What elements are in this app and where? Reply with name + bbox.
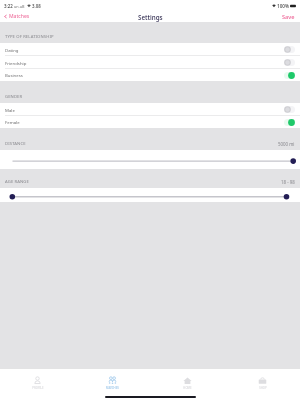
staticText: HOME [183, 386, 192, 390]
button[interactable]: Toggle [284, 59, 295, 66]
button[interactable]: SHOP [225, 369, 300, 391]
staticText: 100% [277, 3, 289, 9]
button[interactable]: Dating [0, 43, 300, 56]
button[interactable]: Back [3, 13, 30, 20]
button[interactable]: Slider [0, 150, 300, 169]
staticText: Friendship [5, 60, 27, 66]
staticText: 3:22 [4, 3, 13, 9]
staticText: SHOP [259, 386, 267, 390]
button[interactable]: Friendship [0, 56, 300, 69]
staticText: 18 - 98 [281, 179, 295, 185]
staticText: GENDER [5, 94, 23, 100]
other: Back [3, 14, 8, 19]
button[interactable]: Toggle [284, 72, 295, 79]
button[interactable]: HOME [150, 369, 225, 391]
staticText: DISTANCE [5, 141, 26, 147]
staticText: 5000 mi [278, 141, 295, 147]
button[interactable]: Toggle [284, 106, 295, 113]
button[interactable]: Toggle [284, 119, 295, 126]
staticText: 3.08 [32, 3, 41, 9]
button[interactable]: MATCHES [75, 369, 150, 391]
staticText: Male [5, 107, 15, 113]
staticText: Matches [9, 13, 30, 20]
button[interactable]: Slider [0, 188, 300, 202]
button[interactable]: Male [0, 103, 300, 116]
staticText: Female [5, 119, 20, 125]
staticText: PROFILE [32, 386, 44, 390]
staticText: MATCHES [106, 386, 119, 390]
staticText: Business [5, 72, 23, 78]
button[interactable]: Business [0, 69, 300, 81]
staticText: TYPE OF RELATIONSHIP [5, 34, 54, 40]
staticText: AGE RANGE [5, 179, 29, 185]
button[interactable]: Toggle [284, 46, 295, 53]
staticText: Dating [5, 47, 19, 53]
button[interactable]: Save [282, 13, 295, 21]
staticText: un.uB [14, 4, 25, 9]
button[interactable]: PROFILE [0, 369, 75, 391]
button[interactable]: Female [0, 116, 300, 128]
staticText: Settings [138, 13, 163, 21]
